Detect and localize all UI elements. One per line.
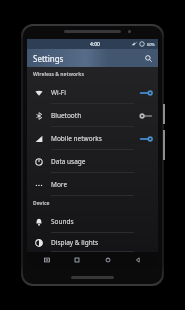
- button[interactable]: Recent apps: [36, 252, 58, 267]
- button[interactable]: Search: [141, 51, 155, 65]
- button[interactable]: More: [27, 173, 158, 196]
- button[interactable]: Off: [139, 112, 153, 120]
- button[interactable]: Sounds: [27, 210, 158, 233]
- button[interactable]: Overview: [66, 252, 88, 267]
- button[interactable]: Data usage: [27, 150, 158, 173]
- staticText: Settings: [33, 53, 64, 64]
- staticText: Mobile networks: [51, 134, 102, 143]
- button[interactable]: Bluetooth: [27, 104, 158, 127]
- button[interactable]: Mobile networks: [27, 127, 158, 150]
- staticText: Display & lights: [51, 238, 99, 247]
- staticText: Sounds: [51, 217, 74, 226]
- button[interactable]: Home: [97, 252, 119, 267]
- button[interactable]: On: [139, 135, 153, 143]
- button[interactable]: Display & lights: [27, 233, 158, 252]
- staticText: Data usage: [51, 157, 86, 166]
- staticText: Wireless & networks: [33, 71, 84, 78]
- staticText: 60%: [147, 42, 155, 47]
- button[interactable]: Back: [127, 252, 149, 267]
- staticText: Device: [33, 200, 50, 207]
- staticText: Bluetooth: [51, 111, 82, 120]
- button[interactable]: Wi-Fi: [27, 81, 158, 104]
- staticText: 4:00: [90, 41, 100, 48]
- staticText: Wi-Fi: [51, 88, 66, 97]
- staticText: More: [51, 180, 68, 189]
- button[interactable]: On: [139, 89, 153, 97]
